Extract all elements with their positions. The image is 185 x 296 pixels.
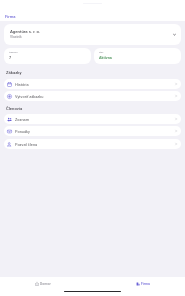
staticText: Členovia [9,51,18,54]
button[interactable]: Členovia [4,48,91,64]
button[interactable]: História [4,79,181,89]
button[interactable]: Domov [35,277,51,290]
button[interactable]: Vytvoriť zákazku [4,91,181,101]
staticText: Domov [40,282,51,286]
staticText: Agentúra s. r. o. [10,29,41,34]
staticText: Pozvať člena [15,142,174,147]
staticText: Firma [5,14,16,19]
button[interactable]: Firma [136,277,150,290]
button[interactable]: Zoznam [4,114,181,124]
button[interactable]: Agentúra s. r. o. [4,24,181,45]
staticText: Aktívna [99,55,112,59]
staticText: História [15,82,174,87]
staticText: Ponuáky [15,129,174,134]
button[interactable]: Pozvať člena [4,139,181,149]
other: Firma [136,282,140,286]
staticText: Členovia [6,106,23,111]
button[interactable]: Stav [94,48,181,64]
staticText: Vytvoriť zákazku [15,94,174,99]
staticText: 7 [9,55,12,59]
button[interactable]: Ponuáky [4,126,181,136]
staticText: Vlastník [10,35,22,39]
staticText: Zákazky [6,70,22,75]
staticText: Stav [99,51,104,54]
staticText: Firma [141,282,150,286]
staticText: Zoznam [15,117,174,122]
other: Domov [35,282,39,286]
